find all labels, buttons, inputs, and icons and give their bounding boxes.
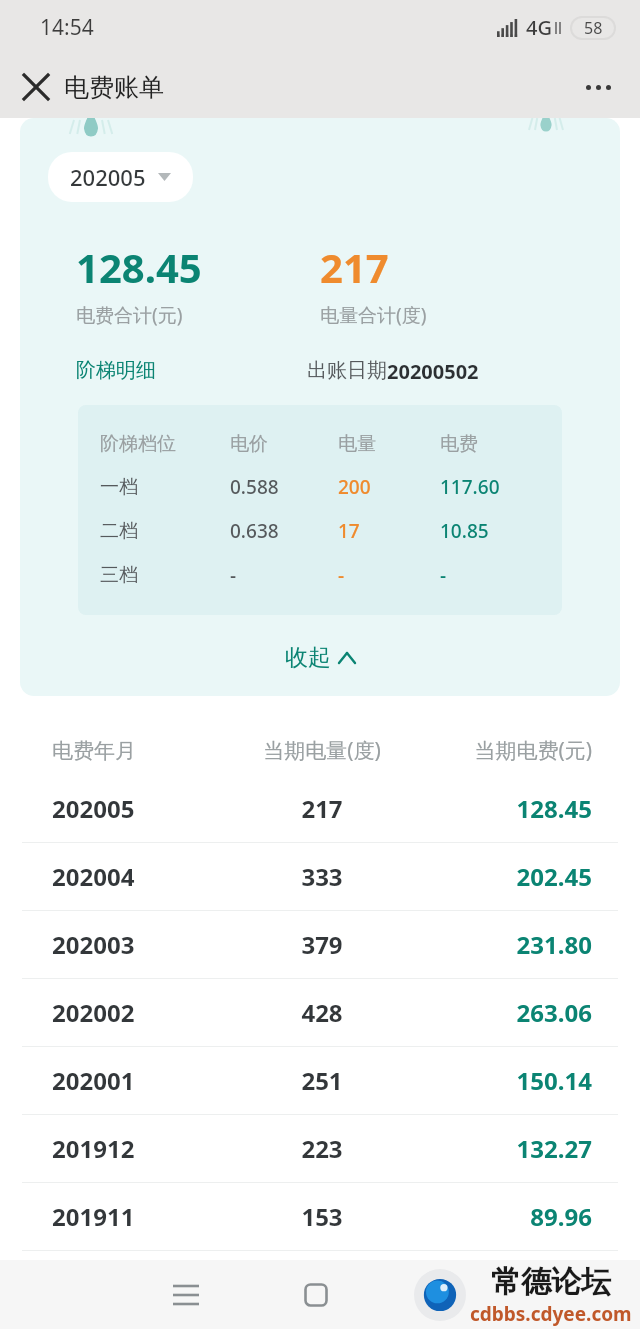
button[interactable]: 202003 [22, 911, 618, 978]
button[interactable]: 201911 [22, 1183, 618, 1250]
staticText: 74.24 [412, 1319, 592, 1329]
staticText: 电量 [338, 432, 440, 456]
staticText: 202005 [52, 792, 232, 825]
staticText: 202002 [52, 996, 232, 1029]
staticText: 153 [232, 1200, 412, 1233]
staticText: 202.45 [412, 860, 592, 893]
button[interactable]: 202002 [22, 979, 618, 1046]
staticText: 常德论坛 [491, 1263, 611, 1301]
button[interactable]: Close [8, 59, 64, 115]
staticText: cdbbs.cdyee.com [470, 1301, 632, 1327]
staticText: 10.85 [440, 518, 554, 544]
staticText: - [230, 562, 338, 588]
staticText: 收起 [285, 643, 331, 672]
button[interactable]: 202001 [22, 1047, 618, 1114]
staticText: 0.638 [230, 518, 338, 544]
button[interactable]: 202005 [22, 775, 618, 842]
staticText: 阶梯档位 [100, 432, 230, 456]
staticText: 64.68 [412, 1268, 592, 1301]
staticText: - [440, 562, 554, 588]
staticText: 201912 [52, 1132, 232, 1165]
staticText: 379 [232, 928, 412, 961]
staticText: 202003 [52, 928, 232, 961]
staticText: 电费合计(元) [76, 302, 183, 328]
button[interactable]: 202005 [48, 152, 193, 202]
staticText: 128.45 [76, 240, 202, 294]
staticText: 二档 [100, 519, 230, 543]
staticText: 0.588 [230, 474, 338, 500]
button[interactable]: 201910 [22, 1251, 618, 1318]
staticText: 一档 [100, 475, 230, 499]
staticText: 428 [232, 996, 412, 1029]
button[interactable]: More options [570, 59, 626, 115]
staticText: 217 [232, 792, 412, 825]
button[interactable]: 阶梯明细 [76, 358, 307, 383]
staticText: 200 [338, 474, 440, 500]
staticText: 202001 [52, 1064, 232, 1097]
staticText: 263.06 [412, 996, 592, 1029]
staticText: 128.45 [412, 792, 592, 825]
staticText: 201910 [52, 1268, 232, 1301]
staticText: 201911 [52, 1200, 232, 1233]
staticText: 电费年月 [52, 738, 232, 764]
staticText: 58 [584, 17, 603, 39]
button[interactable]: 201909 [22, 1319, 618, 1329]
button[interactable]: Recents [158, 1267, 214, 1323]
button[interactable]: 202004 [22, 843, 618, 910]
staticText: 电量合计(度) [320, 302, 427, 328]
staticText: 电费 [440, 432, 554, 456]
staticText: 出账日期 [307, 358, 387, 383]
staticText: 89.96 [412, 1200, 592, 1233]
staticText: 20200502 [387, 358, 479, 385]
staticText: 132.27 [412, 1132, 592, 1165]
staticText: - [338, 562, 440, 588]
staticText: 电费账单 [64, 72, 164, 103]
staticText: 4G [526, 14, 552, 41]
staticText: 333 [232, 860, 412, 893]
staticText: 150.14 [412, 1064, 592, 1097]
button[interactable]: 收起 [20, 633, 620, 682]
staticText: 217 [320, 240, 389, 294]
staticText: 202005 [70, 162, 146, 192]
staticText: 231.80 [412, 928, 592, 961]
staticText: 223 [232, 1132, 412, 1165]
staticText: 117.60 [440, 474, 554, 500]
staticText: 202004 [52, 860, 232, 893]
staticText: 电价 [230, 432, 338, 456]
staticText: 当期电费(元) [412, 736, 592, 765]
staticText: 17 [338, 518, 440, 544]
button[interactable]: 201912 [22, 1115, 618, 1182]
staticText: 251 [232, 1064, 412, 1097]
staticText: 110 [232, 1268, 412, 1301]
staticText: 三档 [100, 563, 230, 587]
staticText: 14:54 [40, 13, 94, 42]
button[interactable]: Home [288, 1267, 344, 1323]
staticText: 当期电量(度) [232, 736, 412, 765]
